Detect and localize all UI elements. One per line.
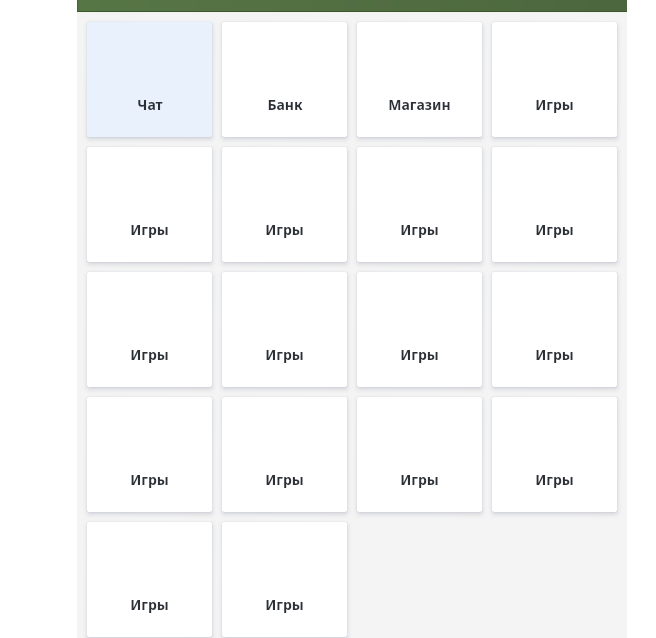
button[interactable]: Игры (87, 522, 212, 637)
button[interactable]: Игры (357, 272, 482, 387)
staticText: Игры (130, 595, 169, 614)
staticText: Игры (265, 470, 304, 489)
staticText: Игры (535, 95, 574, 114)
button[interactable]: Игры (222, 147, 347, 262)
button[interactable]: Игры (222, 397, 347, 512)
staticText: Игры (535, 220, 574, 239)
button[interactable]: App bar (77, 0, 627, 11)
staticText: Игры (265, 220, 304, 239)
staticText: Игры (130, 220, 169, 239)
staticText: Игры (400, 345, 439, 364)
button[interactable]: Чат (87, 22, 212, 137)
button[interactable]: Игры (87, 272, 212, 387)
button[interactable]: Игры (492, 147, 617, 262)
staticText: Игры (265, 345, 304, 364)
button[interactable]: Игры (222, 522, 347, 637)
button[interactable]: Игры (222, 272, 347, 387)
button[interactable]: Игры (492, 272, 617, 387)
button[interactable]: Игры (87, 397, 212, 512)
button[interactable]: Игры (357, 147, 482, 262)
button[interactable]: Игры (492, 397, 617, 512)
staticText: Чат (137, 95, 163, 114)
button[interactable]: Игры (357, 397, 482, 512)
staticText: Игры (265, 595, 304, 614)
staticText: Игры (130, 345, 169, 364)
staticText: Магазин (388, 95, 451, 114)
staticText: Игры (400, 470, 439, 489)
staticText: Игры (130, 470, 169, 489)
staticText: Игры (535, 345, 574, 364)
button[interactable]: Банк (222, 22, 347, 137)
staticText: Игры (535, 470, 574, 489)
staticText: Банк (267, 95, 303, 114)
staticText: Игры (400, 220, 439, 239)
button[interactable]: Магазин (357, 22, 482, 137)
button[interactable]: Игры (87, 147, 212, 262)
button[interactable]: Игры (492, 22, 617, 137)
